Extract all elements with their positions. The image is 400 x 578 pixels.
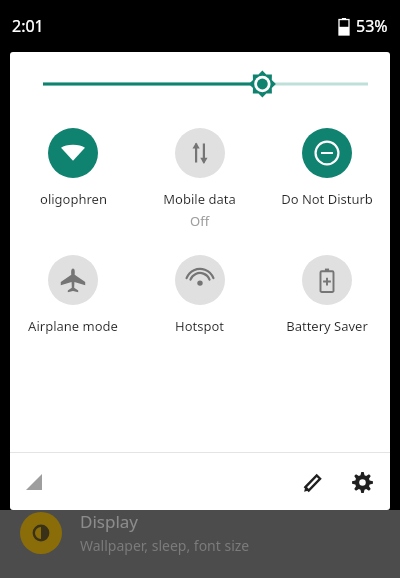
button[interactable]	[10, 52, 390, 112]
staticText: 2:01	[12, 15, 44, 37]
button[interactable]: Settings	[342, 462, 382, 502]
staticText: 53%	[356, 15, 388, 37]
staticText: Battery Saver	[286, 317, 368, 335]
staticText: Airplane mode	[28, 317, 118, 335]
button[interactable]: Signal strength	[16, 464, 52, 500]
staticText: Hotspot	[175, 317, 224, 335]
staticText: oligophren	[40, 190, 107, 208]
staticText: Display	[80, 510, 138, 533]
button[interactable]: oligophren	[10, 128, 136, 208]
button[interactable]: Edit tiles	[292, 462, 332, 502]
staticText: Off	[190, 212, 210, 230]
button[interactable]: Mobile data	[136, 128, 263, 230]
staticText: Wallpaper, sleep, font size	[80, 536, 250, 555]
button[interactable]: Airplane mode	[10, 255, 136, 335]
staticText: Do Not Disturb	[281, 190, 373, 208]
button[interactable]: Do Not Disturb	[263, 128, 390, 208]
staticText: Mobile data	[163, 190, 236, 208]
button[interactable]: Hotspot	[136, 255, 263, 335]
button[interactable]: Battery Saver	[263, 255, 390, 335]
button[interactable]: Display	[0, 510, 400, 555]
